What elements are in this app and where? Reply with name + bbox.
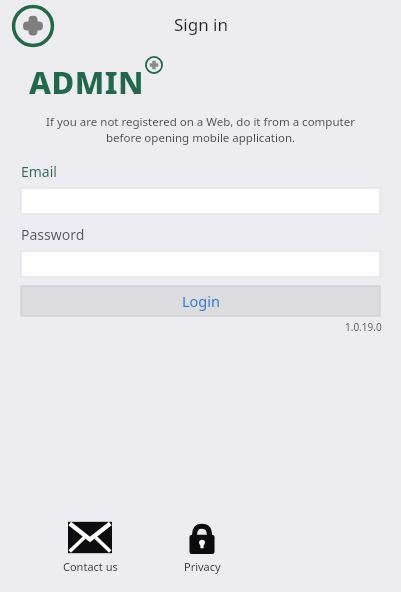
staticText: ADMIN [29, 61, 145, 103]
staticText: Privacy [184, 559, 221, 574]
staticText: Contact us [63, 559, 118, 574]
button[interactable]: App logo [7, 0, 59, 52]
button[interactable]: Text input [21, 251, 380, 277]
staticText: Sign in [174, 13, 228, 36]
staticText: Password [21, 225, 85, 244]
button[interactable]: Login [21, 286, 380, 316]
button[interactable]: Privacy [153, 521, 251, 574]
button[interactable]: Text input [21, 188, 380, 214]
staticText: Login [182, 291, 220, 311]
staticText: 1.0.19.0 [345, 320, 382, 334]
button[interactable]: Contact us [41, 521, 139, 574]
staticText: Email [21, 162, 57, 181]
staticText: If you are not registered on a Web, do i… [28, 114, 373, 145]
